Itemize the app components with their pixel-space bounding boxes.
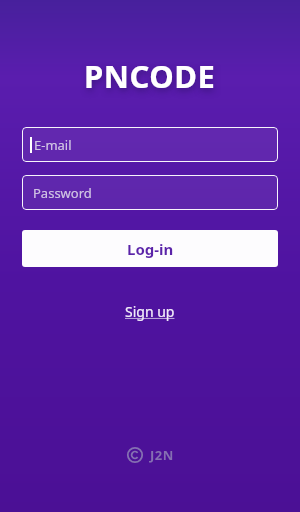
staticText: Log-in	[127, 239, 174, 259]
staticText: Password	[33, 184, 92, 202]
staticText: J2N	[150, 446, 174, 464]
staticText: Sign up	[125, 302, 175, 321]
staticText: PNCODE	[84, 55, 216, 97]
staticText: E-mail	[34, 136, 72, 154]
